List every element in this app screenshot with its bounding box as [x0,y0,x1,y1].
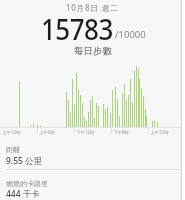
staticText: 距離 [6,145,20,154]
staticText: 上午12時 [2,129,21,135]
staticText: 下午6時 [113,129,130,135]
staticText: 9.55 公里 [6,155,43,167]
staticText: 上午6時 [39,129,56,135]
staticText: 15783 [41,9,113,48]
staticText: 燃燒的卡路里 [6,179,48,188]
staticText: 下午12時 [76,129,95,135]
button[interactable]: 燃燒的卡路里 [0,178,185,200]
staticText: 每日步數 [74,45,112,57]
staticText: /10000 [115,28,146,41]
staticText: 10月8日 週二 [66,2,119,13]
staticText: 上午12時 [150,129,169,135]
button[interactable]: 距離 [0,144,185,170]
staticText: 444 千卡 [6,188,40,200]
